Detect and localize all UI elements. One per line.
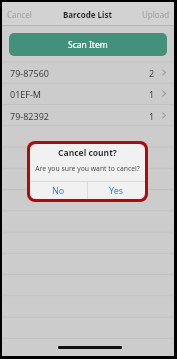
staticText: No [52,184,65,196]
button[interactable]: Cancel [2,3,63,26]
staticText: Scan Item [68,39,108,51]
button[interactable]: 79-82392 [2,105,174,126]
button[interactable]: Upload [112,3,174,26]
staticText: Upload [142,9,170,20]
staticText: 01EF-M [10,88,42,100]
staticText: Barcode List [63,9,112,20]
staticText: 79-82392 [10,110,49,122]
button[interactable]: Scan Item [9,33,167,56]
staticText: 1 [149,88,155,100]
staticText: Yes [109,184,124,196]
button[interactable]: Yes [88,182,145,199]
button[interactable]: No [30,182,87,199]
staticText: Are you sure you want to cancel? [30,164,145,173]
button[interactable]: 01EF-M [2,83,174,104]
staticText: 79-87560 [10,67,49,79]
staticText: 1 [149,110,155,122]
staticText: Cancel [7,9,32,20]
button[interactable]: 79-87560 [2,62,174,83]
staticText: Cancel count? [30,147,145,159]
staticText: 2 [149,67,155,79]
